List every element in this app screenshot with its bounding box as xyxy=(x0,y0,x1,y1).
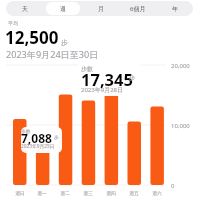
staticText: 7,088 xyxy=(21,130,52,146)
staticText: 週五 xyxy=(122,190,146,196)
button[interactable]: 6個月 xyxy=(119,1,156,16)
staticText: 週四 xyxy=(99,190,123,196)
button[interactable]: 步數 xyxy=(77,63,142,96)
staticText: 2023年9月24日至30日 xyxy=(6,48,99,60)
button[interactable]: 步數 xyxy=(21,127,62,153)
staticText: 週 xyxy=(60,5,66,13)
staticText: 2023年9月25日 xyxy=(21,143,55,150)
staticText: 步數 xyxy=(21,128,31,134)
staticText: 天 xyxy=(22,5,28,13)
staticText: 週二 xyxy=(53,190,77,196)
staticText: 週一 xyxy=(30,190,54,196)
staticText: 週三 xyxy=(76,190,100,196)
button[interactable]: 年 xyxy=(156,1,193,16)
staticText: 步數 xyxy=(81,65,93,73)
staticText: 週六 xyxy=(145,190,169,196)
staticText: 12,500 xyxy=(5,26,59,49)
staticText: 6個月 xyxy=(130,5,146,13)
staticText: 步 xyxy=(54,134,59,140)
staticText: 月 xyxy=(98,5,104,13)
staticText: 步 xyxy=(61,38,68,47)
button[interactable]: 天 xyxy=(6,1,44,16)
staticText: 平均 xyxy=(8,20,18,26)
button[interactable]: 月 xyxy=(82,1,119,16)
staticText: 週日 xyxy=(8,190,32,196)
button[interactable]: 週 xyxy=(44,1,82,16)
staticText: 20,000 xyxy=(171,62,190,70)
staticText: 10,000 xyxy=(171,122,190,130)
staticText: 年 xyxy=(172,5,178,13)
staticText: 步 xyxy=(129,74,135,82)
staticText: 2023年9月28日 xyxy=(81,86,124,94)
staticText: 17,345 xyxy=(81,68,133,90)
staticText: 0 xyxy=(171,182,175,190)
